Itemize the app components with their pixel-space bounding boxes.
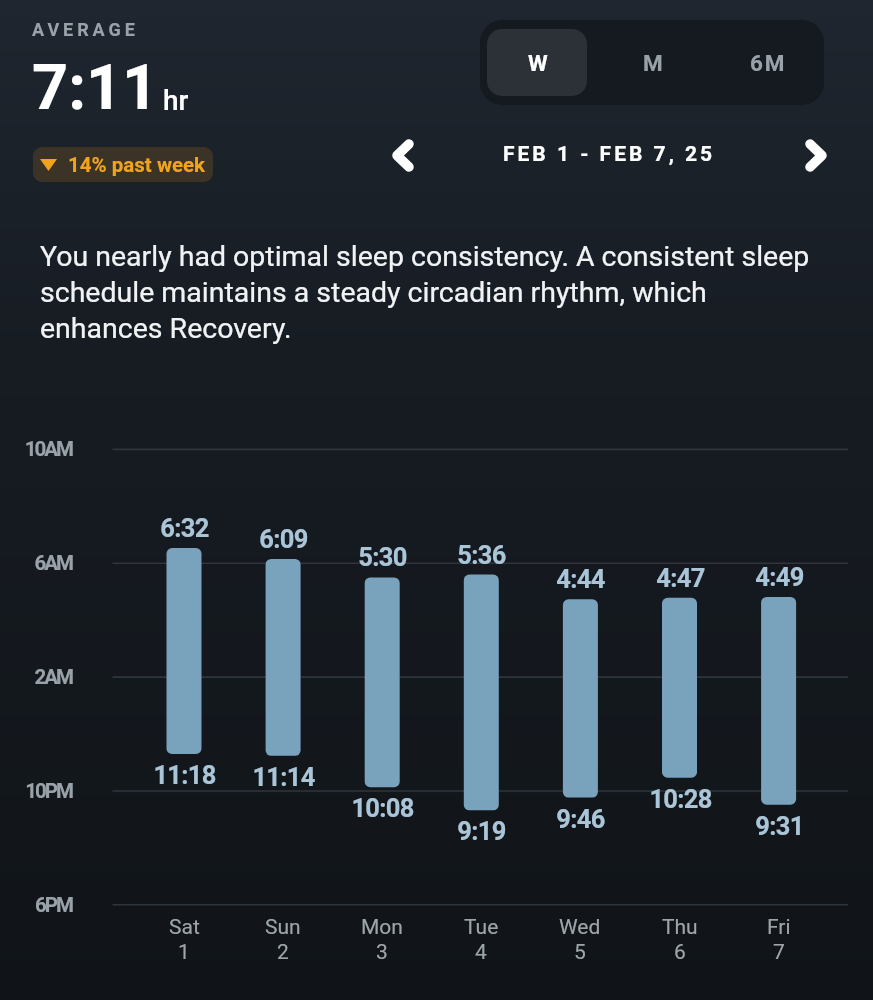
button[interactable]: Mon [332, 915, 432, 977]
button[interactable]: Tue [431, 915, 531, 977]
staticText: 4 [475, 940, 487, 965]
staticText: 2AM [34, 665, 72, 689]
staticText: 11:18 [153, 760, 216, 790]
staticText: 7 [773, 940, 785, 965]
staticText: 10PM [25, 779, 72, 803]
button[interactable]: 14% past week [33, 147, 213, 182]
button[interactable]: Previous week [379, 131, 427, 179]
staticText: 6:32 [160, 513, 209, 543]
staticText: 2 [277, 940, 289, 965]
staticText: FEB 1 - FEB 7, 25 [503, 142, 716, 167]
button[interactable]: Sun 2 [266, 523, 301, 792]
staticText: 5 [574, 940, 586, 965]
staticText: Sun [265, 915, 301, 940]
staticText: Tue [464, 915, 499, 940]
staticText: AVERAGE [32, 19, 139, 40]
button[interactable]: Tue 4 [464, 539, 499, 847]
staticText: 9:31 [755, 811, 804, 841]
staticText: 11:14 [252, 762, 315, 792]
staticText: 10:08 [351, 793, 414, 823]
staticText: M [643, 50, 665, 76]
button[interactable]: Sun [233, 915, 333, 977]
button[interactable]: Wed [530, 915, 630, 977]
button[interactable]: W [487, 29, 587, 96]
staticText: hr [163, 84, 189, 117]
staticText: You nearly had optimal sleep consistency… [40, 240, 830, 345]
staticText: 10AM [24, 437, 72, 461]
staticText: 1 [178, 940, 190, 965]
staticText: Sat [169, 915, 200, 940]
staticText: 4:49 [755, 562, 804, 592]
staticText: Fri [767, 915, 791, 940]
staticText: W [528, 50, 550, 76]
staticText: Thu [662, 915, 698, 940]
staticText: 3 [376, 940, 388, 965]
button[interactable]: Mon 3 [365, 541, 400, 823]
staticText: 6 [674, 940, 686, 965]
staticText: 4:47 [656, 563, 705, 593]
staticText: 14% past week [68, 153, 206, 177]
button[interactable]: 6M [716, 29, 817, 96]
staticText: 6AM [34, 551, 72, 575]
button[interactable]: Next week [792, 131, 840, 179]
staticText: 6PM [35, 893, 72, 917]
button[interactable]: Fri [729, 915, 829, 977]
staticText: 5:36 [457, 540, 506, 570]
staticText: 7:11 [32, 51, 159, 125]
button[interactable]: Thu [630, 915, 730, 977]
button[interactable]: M [601, 29, 702, 96]
staticText: 9:46 [556, 804, 605, 834]
button[interactable]: Sat 1 [167, 512, 202, 790]
button[interactable]: Thu 6 [662, 562, 697, 814]
button[interactable]: Sat [134, 915, 234, 977]
staticText: 6M [750, 50, 787, 76]
staticText: 10:28 [649, 784, 712, 814]
staticText: 5:30 [358, 542, 407, 572]
staticText: 6:09 [259, 524, 308, 554]
staticText: Wed [559, 915, 601, 940]
staticText: 9:19 [457, 816, 506, 846]
button[interactable]: Fri 7 [761, 561, 796, 841]
button[interactable]: Wed 5 [563, 563, 598, 833]
staticText: 4:44 [556, 564, 605, 594]
staticText: Mon [361, 915, 403, 940]
